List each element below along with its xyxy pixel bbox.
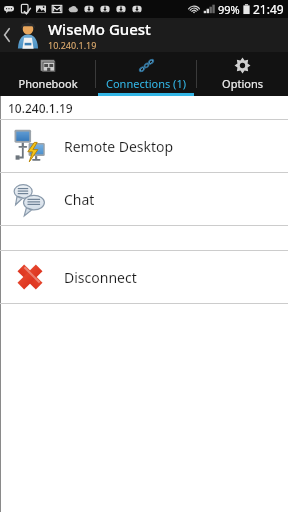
button[interactable]: Chat xyxy=(0,173,288,225)
button[interactable]: Disconnect xyxy=(0,251,288,303)
staticText: 10.240.1.19 xyxy=(48,39,97,51)
staticText: 21:49 xyxy=(253,1,284,17)
staticText: Disconnect xyxy=(64,268,137,287)
button[interactable]: Phonebook xyxy=(0,52,95,96)
staticText: Options xyxy=(222,76,263,91)
button[interactable]: Connections (1) xyxy=(96,52,196,96)
button[interactable]: Remote Desktop xyxy=(0,120,288,172)
staticText: Chat xyxy=(64,190,95,209)
staticText: Connections (1) xyxy=(106,76,186,91)
button[interactable]: Back to WiseMo Guest xyxy=(0,18,288,52)
staticText: 10.240.1.19 xyxy=(8,100,73,116)
staticText: Remote Desktop xyxy=(64,137,174,156)
button[interactable]: Options xyxy=(197,52,288,96)
staticText: WiseMo Guest xyxy=(48,19,151,39)
staticText: 99% xyxy=(218,2,240,17)
staticText: Phonebook xyxy=(18,76,78,91)
